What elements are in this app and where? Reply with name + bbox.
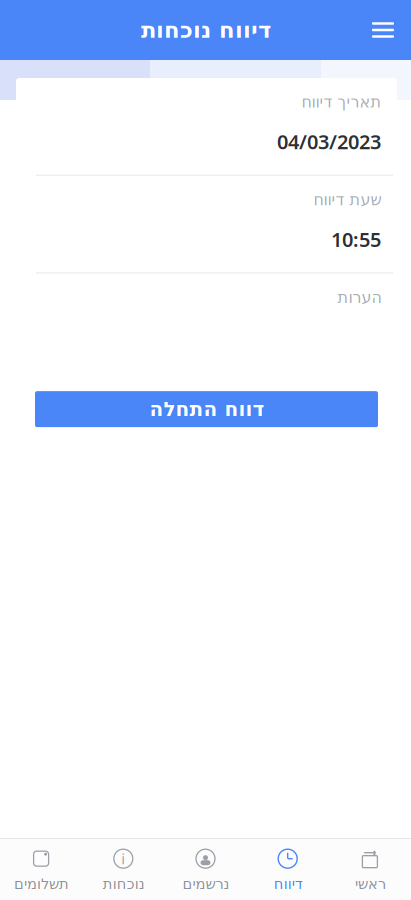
staticText: הערות	[337, 288, 381, 307]
staticText: תשלומים	[14, 876, 69, 892]
button[interactable]: נרשמים	[164, 839, 247, 900]
staticText: i	[121, 849, 125, 868]
staticText: ראשי	[354, 876, 385, 892]
button[interactable]: שעת דיווח	[16, 176, 397, 272]
staticText: דיווח נוכחות	[140, 17, 270, 43]
button[interactable]: דווח התחלה	[35, 391, 378, 427]
button[interactable]: ראשי	[329, 839, 411, 900]
staticText: 04/03/2023	[277, 128, 381, 155]
button[interactable]: תאריך דיווח	[16, 78, 397, 175]
staticText: נרשמים	[182, 876, 229, 892]
staticText: תאריך דיווח	[301, 93, 381, 111]
button[interactable]: דיווח	[247, 839, 329, 900]
staticText: דיווח	[273, 876, 302, 892]
staticText: שעת דיווח	[313, 191, 381, 209]
button[interactable]: תשלומים	[0, 839, 82, 900]
button[interactable]: i	[82, 839, 164, 900]
button[interactable]: הערות	[16, 273, 397, 370]
button[interactable]: תפריט	[361, 8, 405, 52]
staticText: נוכחות	[102, 876, 144, 892]
staticText: דווח התחלה	[149, 398, 264, 420]
staticText: 10:55	[331, 226, 381, 252]
